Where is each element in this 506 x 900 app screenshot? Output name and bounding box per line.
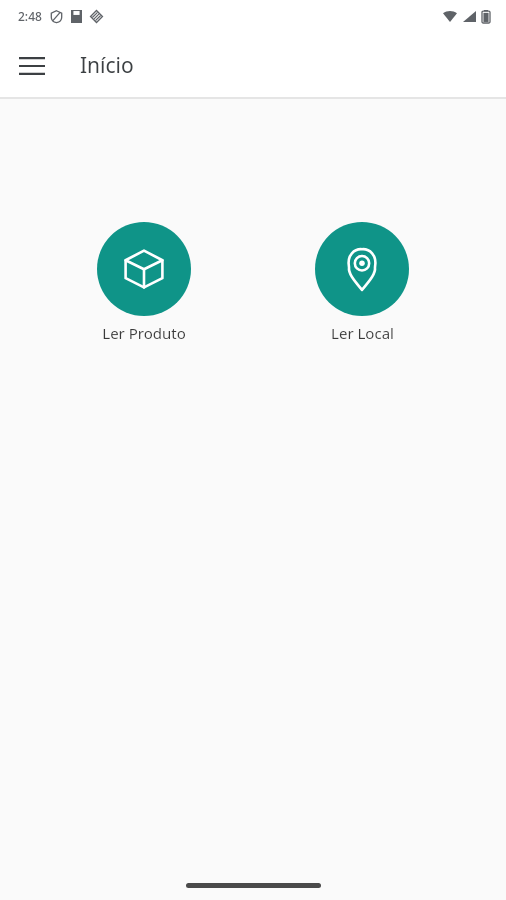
button[interactable]: Open navigation menu <box>6 40 58 92</box>
staticText: Ler Local <box>331 323 394 343</box>
staticText: 2:48 <box>18 8 42 24</box>
button[interactable]: Ler Local <box>309 220 415 345</box>
staticText: Início <box>80 51 134 80</box>
button[interactable]: Ler Produto <box>91 220 197 345</box>
staticText: Ler Produto <box>102 323 186 343</box>
